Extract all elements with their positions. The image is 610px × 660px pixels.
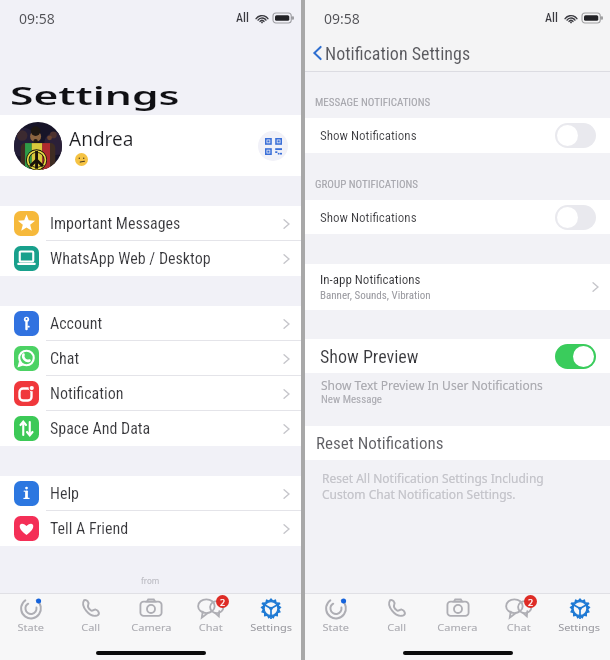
button[interactable]: Space And Data <box>0 411 301 446</box>
button[interactable]: In-app Notifications <box>305 264 610 310</box>
button[interactable]: Show Notifications <box>555 123 596 148</box>
button[interactable]: Back <box>313 34 471 72</box>
staticText: Notification Settings <box>325 43 471 64</box>
button[interactable]: Show Preview <box>555 344 596 369</box>
button[interactable]: Show Notifications <box>305 118 610 153</box>
button[interactable]: Account <box>0 306 301 341</box>
button[interactable]: Chat <box>181 592 241 637</box>
button[interactable]: Important Messages <box>0 206 301 241</box>
staticText: New Message <box>321 393 382 406</box>
staticText: Show Notifications <box>320 128 417 143</box>
staticText: State <box>323 621 349 633</box>
staticText: 09:58 <box>324 9 360 28</box>
staticText: 2 <box>528 596 534 608</box>
staticText: State <box>18 621 44 633</box>
staticText: Settings <box>10 78 180 112</box>
staticText: Banner, Sounds, Vibration <box>320 289 431 302</box>
staticText: Camera <box>437 621 478 633</box>
button[interactable]: Show QR code <box>258 131 288 161</box>
staticText: Settings <box>558 621 601 633</box>
button[interactable]: Chat <box>488 592 549 637</box>
button[interactable]: State <box>305 592 366 637</box>
staticText: Show Preview <box>320 346 419 367</box>
staticText: Chat <box>507 621 531 633</box>
button[interactable]: Call <box>61 592 121 637</box>
button[interactable]: Reset Notifications <box>305 426 610 460</box>
staticText: Reset All Notification Settings Includin… <box>322 470 544 486</box>
button[interactable]: Show Preview <box>305 339 610 373</box>
button[interactable]: State <box>0 592 61 637</box>
staticText: Account <box>50 314 103 333</box>
staticText: Settings <box>250 621 293 633</box>
staticText: Camera <box>131 621 172 633</box>
staticText: Important Messages <box>50 214 181 233</box>
staticText: Chat <box>50 349 80 368</box>
button[interactable]: Notification <box>0 376 301 411</box>
staticText: 2 <box>220 596 226 608</box>
button[interactable]: Settings <box>241 592 301 637</box>
staticText: GROUP NOTIFICATIONS <box>315 178 419 191</box>
button[interactable]: Show Notifications <box>305 200 610 234</box>
staticText: Custom Chat Notification Settings. <box>322 486 516 502</box>
staticText: WhatsApp Web / Desktop <box>50 249 211 268</box>
staticText: In-app Notifications <box>320 272 421 287</box>
button[interactable]: Chat <box>0 341 301 376</box>
staticText: Chat <box>199 621 223 633</box>
staticText: All <box>545 11 558 25</box>
staticText: from <box>141 575 160 586</box>
staticText: Andrea <box>69 126 134 152</box>
button[interactable]: Camera <box>121 592 181 637</box>
button[interactable]: WhatsApp Web / Desktop <box>0 241 301 276</box>
staticText: 09:58 <box>19 9 55 28</box>
button[interactable]: Settings <box>549 592 610 637</box>
staticText: Call <box>387 621 407 633</box>
button[interactable]: Show Notifications <box>555 205 596 230</box>
staticText: Show Text Preview In User Notifications <box>321 377 543 393</box>
staticText: Notification <box>50 384 124 403</box>
staticText: Tell A Friend <box>50 519 129 538</box>
button[interactable]: Tell A Friend <box>0 511 301 546</box>
staticText: Space And Data <box>50 419 151 438</box>
staticText: Help <box>50 484 79 503</box>
button[interactable]: Call <box>366 592 427 637</box>
staticText: Show Notifications <box>320 210 417 225</box>
button[interactable]: Andrea <box>0 115 301 176</box>
staticText: Call <box>81 621 101 633</box>
staticText: Reset Notifications <box>316 433 444 453</box>
button[interactable]: Camera <box>427 592 488 637</box>
staticText: MESSAGE NOTIFICATIONS <box>315 96 431 109</box>
staticText: All <box>236 11 249 25</box>
button[interactable]: Help <box>0 476 301 511</box>
